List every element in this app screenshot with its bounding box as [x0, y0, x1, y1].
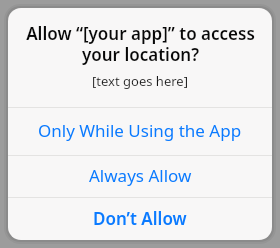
staticText: Always Allow — [89, 164, 192, 187]
staticText: Only While Using the App — [38, 119, 242, 142]
button[interactable]: Only While Using the App — [8, 108, 272, 155]
staticText: Don’t Allow — [93, 207, 187, 230]
button[interactable]: Always Allow — [8, 156, 272, 197]
staticText: Allow “[your app]” to access your locati… — [26, 22, 255, 66]
staticText: [text goes here] — [92, 72, 188, 90]
button[interactable]: Don’t Allow — [8, 198, 272, 240]
